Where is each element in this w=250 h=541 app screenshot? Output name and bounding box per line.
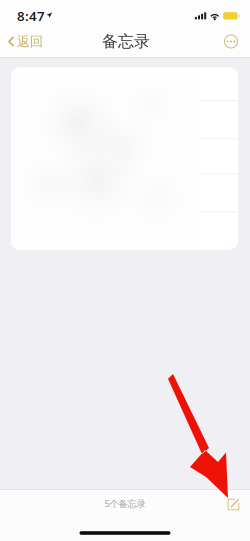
- staticText: 5个备忘录: [104, 497, 145, 510]
- button[interactable]: 返回: [0, 28, 51, 54]
- button[interactable]: 新建备忘录: [222, 493, 245, 516]
- staticText: 8:47: [17, 7, 45, 25]
- staticText: 备忘录: [102, 32, 150, 51]
- staticText: 返回: [17, 33, 43, 50]
- button[interactable]: [11, 139, 238, 174]
- button[interactable]: [11, 101, 238, 139]
- button[interactable]: 更多选项: [218, 28, 244, 54]
